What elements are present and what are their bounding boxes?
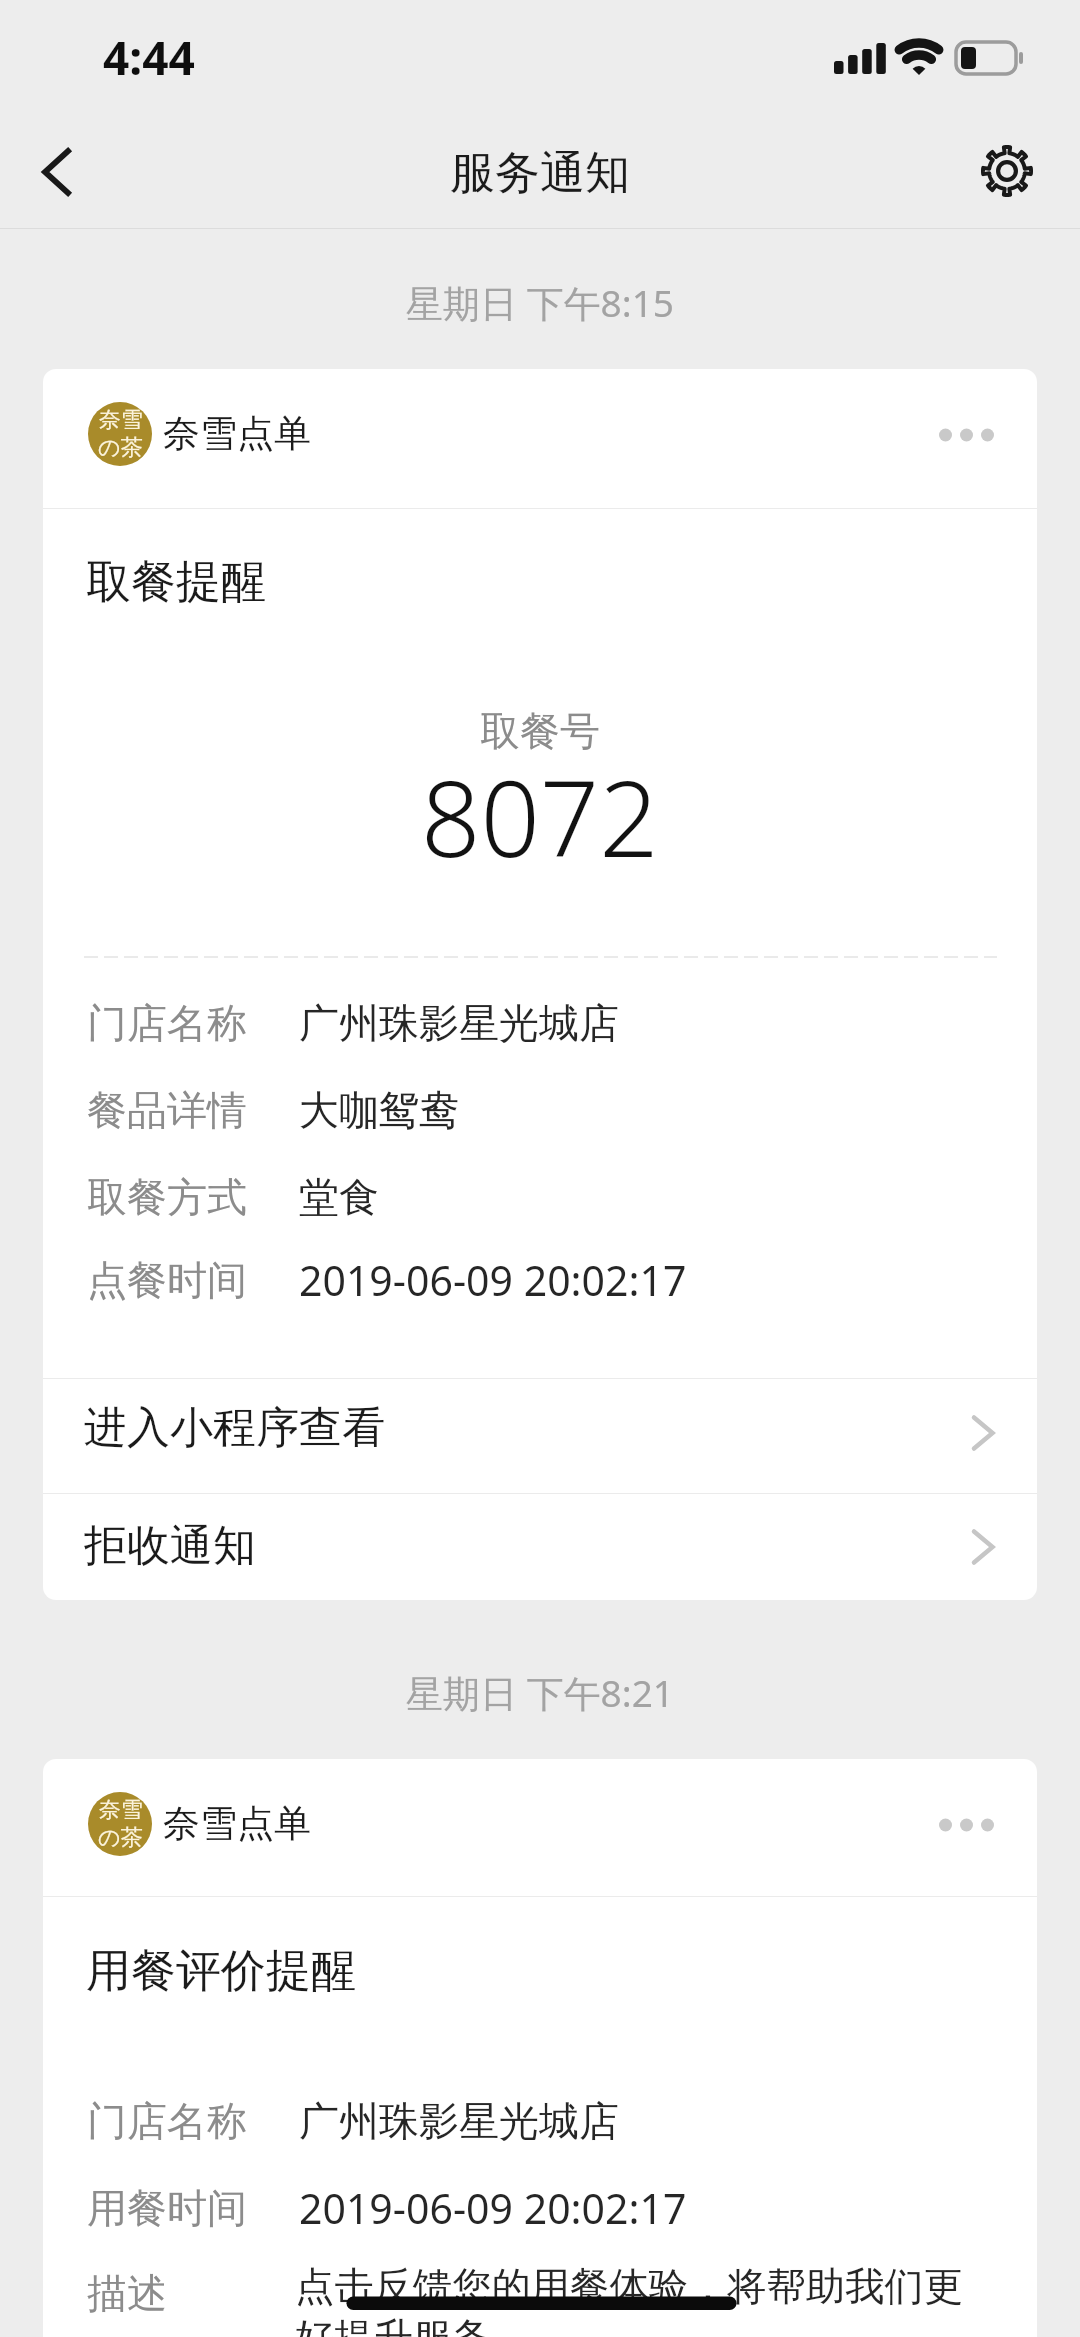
staticText: 餐品详情 [87, 1085, 247, 1135]
button[interactable] [43, 1759, 1037, 1896]
button[interactable]: Settings [957, 121, 1057, 221]
staticText: 服务通知 [450, 145, 630, 202]
button[interactable]: More [905, 395, 995, 475]
button[interactable]: 拒收通知 [43, 1494, 1037, 1599]
staticText: 星期日 下午8:15 [406, 277, 675, 328]
staticText: 进入小程序查看 [84, 1401, 385, 1455]
staticText: 门店名称 [87, 2096, 247, 2146]
staticText: 奈雪 [99, 406, 143, 434]
staticText: 堂食 [299, 1172, 379, 1222]
staticText: 点餐时间 [87, 1255, 247, 1305]
staticText: 奈雪 [99, 1796, 143, 1824]
staticText: 拒收通知 [84, 1519, 256, 1573]
staticText: 取餐方式 [87, 1172, 247, 1222]
staticText: 广州珠影星光城店 [299, 998, 619, 1048]
button[interactable]: Back [6, 122, 106, 222]
button[interactable]: 进入小程序查看 [43, 1379, 1037, 1493]
button[interactable] [43, 369, 1037, 508]
staticText: 取餐提醒 [86, 554, 266, 611]
staticText: 2019-06-09 20:02:17 [299, 1252, 687, 1308]
staticText: 点击反馈您的用餐体验，将帮助我们更好提升服务 [295, 2262, 985, 2337]
staticText: 2019-06-09 20:02:17 [299, 2180, 687, 2236]
staticText: 星期日 下午8:21 [406, 1667, 675, 1718]
staticText: 门店名称 [87, 998, 247, 1048]
staticText: 用餐时间 [87, 2183, 247, 2233]
staticText: 4:44 [103, 26, 195, 89]
staticText: 取餐号 [480, 706, 600, 756]
staticText: 用餐评价提醒 [86, 1943, 356, 2000]
staticText: 奈雪点单 [163, 410, 311, 457]
staticText: 大咖鸳鸯 [299, 1085, 459, 1135]
staticText: 奈雪点单 [163, 1800, 311, 1847]
staticText: 8072 [421, 746, 659, 888]
staticText: 广州珠影星光城店 [299, 2096, 619, 2146]
staticText: の茶 [98, 1824, 143, 1852]
staticText: の茶 [98, 434, 143, 462]
staticText: 描述 [87, 2268, 167, 2318]
button[interactable]: More [905, 1785, 995, 1865]
